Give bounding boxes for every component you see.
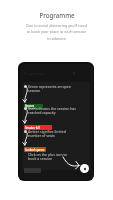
staticText: Limited spaces — [25, 148, 45, 152]
staticText: Red indicates the session has reached ca… — [28, 106, 77, 115]
button[interactable]: Book a session — [80, 164, 89, 173]
staticText: Session full — [25, 126, 40, 130]
staticText: Green represents an open session — [28, 84, 71, 93]
staticText: Click on the plus icon to book a session — [28, 152, 67, 161]
staticText: Programme — [39, 11, 75, 19]
staticText: Spaces available — [25, 104, 43, 109]
staticText: Amber signifies limited number of seats — [28, 129, 66, 138]
staticText: Due to social distancing you'll need to … — [26, 23, 87, 41]
